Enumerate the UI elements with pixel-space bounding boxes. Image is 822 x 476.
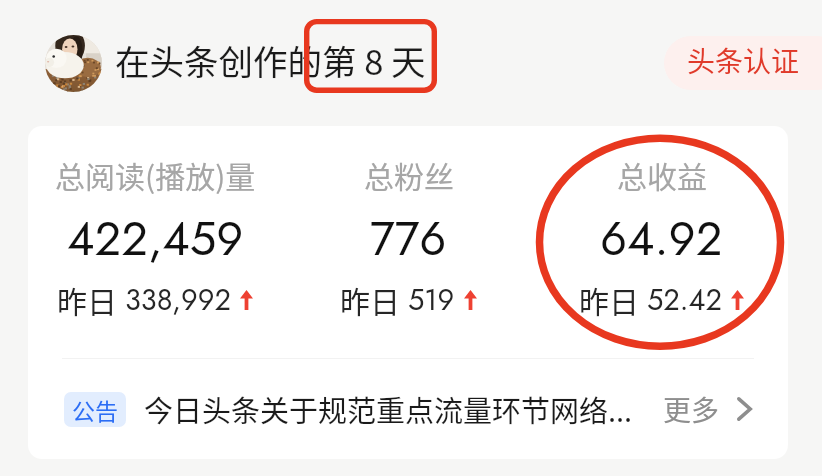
- staticText: 昨日: [340, 278, 400, 321]
- button[interactable]: 公告: [28, 359, 788, 459]
- staticText: 422,459: [67, 205, 244, 273]
- button[interactable]: 总粉丝: [282, 153, 535, 363]
- staticText: 更多: [663, 389, 720, 430]
- staticText: 昨日: [57, 278, 117, 321]
- staticText: 昨日: [579, 278, 639, 321]
- staticText: 总收益: [617, 153, 707, 196]
- staticText: 头条认证: [687, 40, 800, 81]
- staticText: 64.92: [600, 205, 723, 273]
- staticText: 在头条创作的第 8 天: [115, 35, 426, 85]
- button[interactable]: Profile avatar: [45, 35, 102, 92]
- staticText: 总阅读(播放)量: [55, 153, 256, 196]
- staticText: 52.42: [647, 279, 722, 321]
- staticText: 总粉丝: [364, 153, 454, 196]
- staticText: 公告: [72, 393, 118, 426]
- staticText: 338,992: [125, 279, 231, 321]
- staticText: 776: [370, 205, 447, 273]
- button[interactable]: 头条认证: [664, 36, 822, 90]
- button[interactable]: 总收益: [535, 153, 788, 363]
- staticText: 今日头条关于规范重点流量环节网络...: [144, 388, 633, 430]
- staticText: 519: [408, 279, 455, 321]
- button[interactable]: 总阅读(播放)量: [28, 153, 282, 363]
